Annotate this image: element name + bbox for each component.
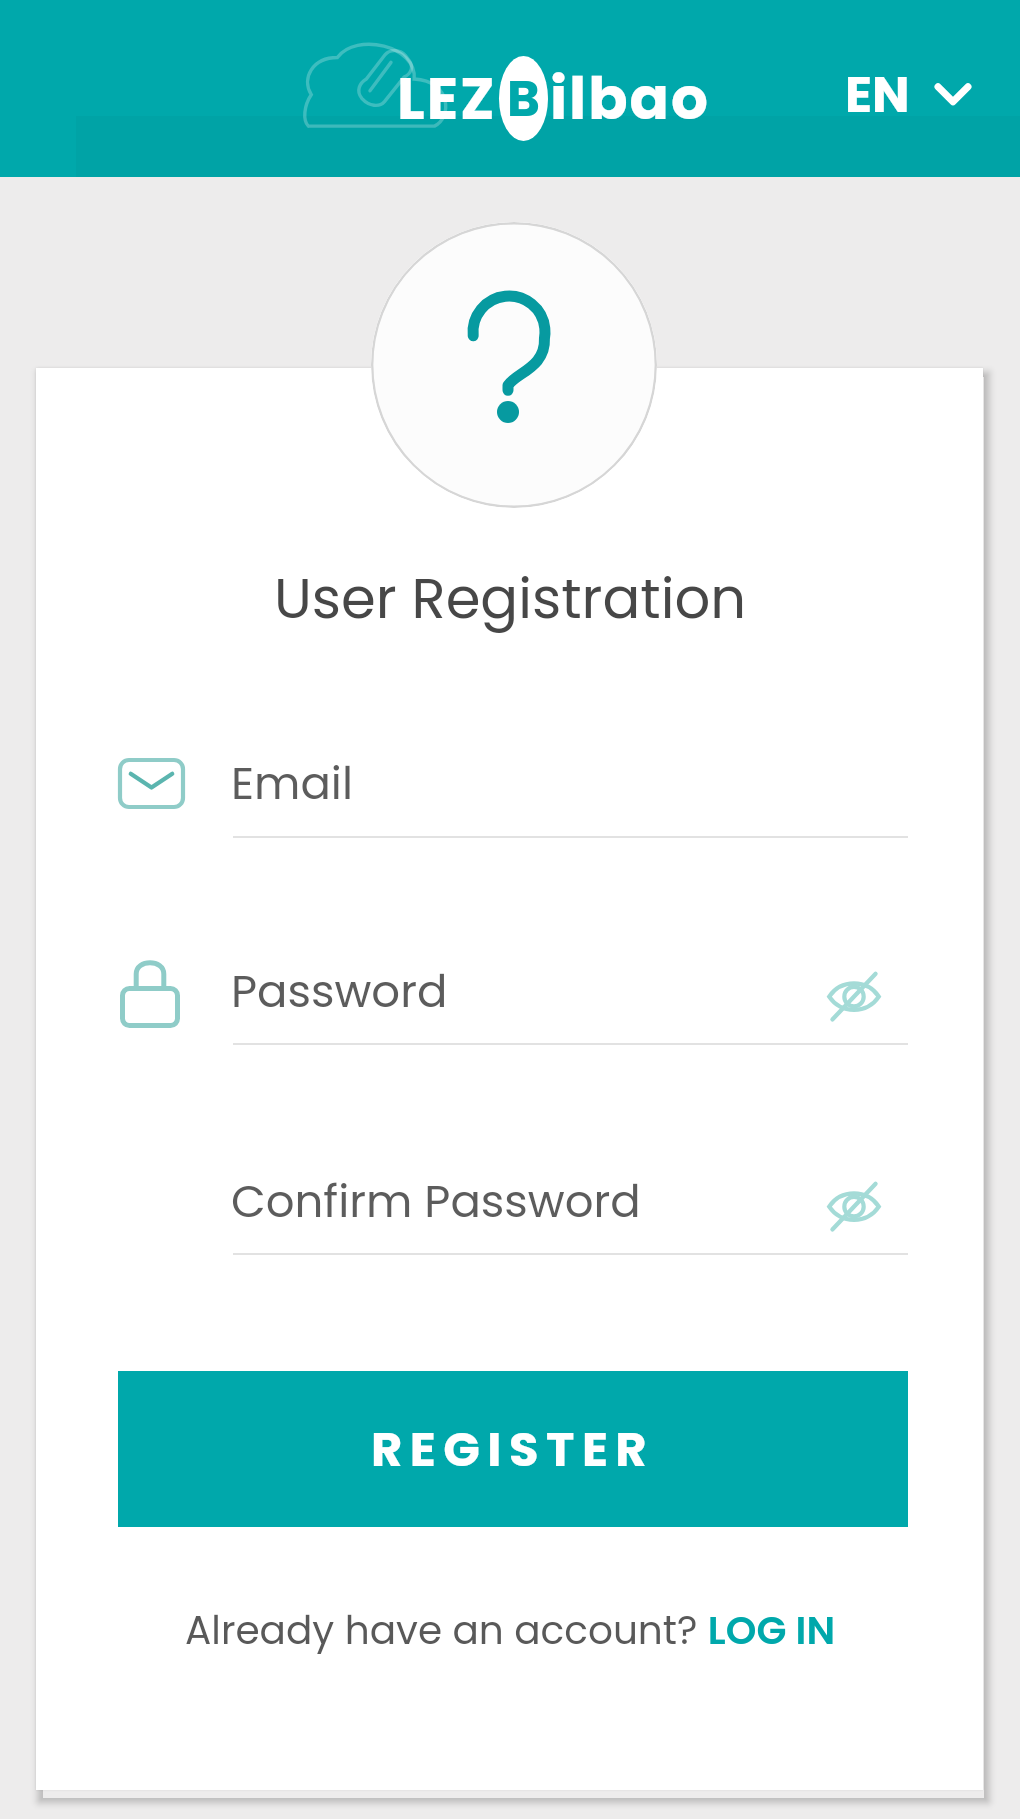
staticText: ilbao [550, 58, 710, 139]
button[interactable]: Help [371, 222, 657, 508]
staticText: Password [231, 960, 448, 1023]
staticText: User Registration [274, 559, 747, 637]
button[interactable]: EN [826, 47, 998, 148]
staticText: LEZ [397, 58, 497, 139]
staticText: Email [231, 752, 353, 815]
staticText: Confirm Password [231, 1170, 641, 1233]
button[interactable]: Show password [812, 959, 896, 1029]
staticText: EN [845, 60, 910, 130]
button[interactable]: REGISTER [118, 1371, 908, 1527]
staticText: REGISTER [371, 1416, 655, 1483]
staticText: Already have an account? LOG IN [185, 1603, 836, 1658]
staticText: B [507, 64, 540, 134]
button[interactable]: Already have an account? LOG IN [177, 1597, 844, 1664]
button[interactable]: Show password [812, 1169, 896, 1239]
